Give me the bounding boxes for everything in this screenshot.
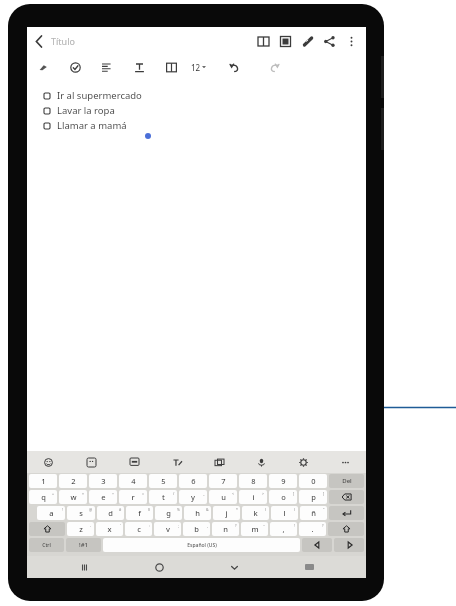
button[interactable]: Paragraph style	[91, 55, 123, 79]
button[interactable]: Ir al supermercado	[27, 88, 366, 103]
staticText: @	[89, 507, 93, 512]
button[interactable]: ñ	[300, 506, 327, 520]
button[interactable]: l	[271, 506, 298, 520]
button[interactable]: Clipboard	[198, 451, 240, 473]
button[interactable]: y	[179, 490, 207, 504]
button[interactable]: More	[324, 451, 366, 473]
button[interactable]: Emoji	[27, 451, 70, 473]
button[interactable]: f	[126, 506, 153, 520]
button[interactable]: 9	[269, 474, 297, 488]
button[interactable]: Shift	[29, 522, 65, 536]
button[interactable]: Shift	[328, 522, 364, 536]
button[interactable]: Recents	[70, 556, 98, 578]
staticText: ×	[82, 491, 85, 496]
button[interactable]: j	[213, 506, 240, 520]
staticText: q	[41, 492, 46, 502]
button[interactable]: u	[209, 490, 237, 504]
button[interactable]: 4	[119, 474, 147, 488]
button[interactable]: p	[299, 490, 327, 504]
button[interactable]: e	[89, 490, 117, 504]
button[interactable]: z	[67, 522, 94, 536]
button[interactable]: Cursor right	[334, 538, 364, 552]
button[interactable]: s	[67, 506, 95, 520]
button[interactable]: Share	[318, 28, 340, 54]
button[interactable]: Backspace	[329, 490, 364, 504]
button[interactable]: i	[239, 490, 267, 504]
button[interactable]: Redo	[258, 55, 290, 79]
staticText: )	[294, 507, 296, 512]
button[interactable]: Handwriting	[156, 451, 198, 473]
staticText: !#1	[79, 541, 88, 549]
staticText: v	[166, 524, 170, 534]
staticText: %	[177, 507, 180, 512]
button[interactable]: View mode	[252, 28, 274, 54]
button[interactable]: 8	[239, 474, 267, 488]
button[interactable]: Español (US)	[103, 538, 300, 552]
button[interactable]: .	[299, 522, 326, 536]
button[interactable]: 12	[191, 56, 206, 78]
staticText: t	[162, 492, 165, 502]
button[interactable]: Checklist	[59, 55, 91, 79]
button[interactable]: 5	[149, 474, 177, 488]
button[interactable]: 3	[89, 474, 117, 488]
button[interactable]: v	[154, 522, 181, 536]
button[interactable]: a	[37, 506, 65, 520]
staticText: Llamar a mamá	[57, 119, 127, 132]
button[interactable]: Settings	[282, 451, 324, 473]
staticText: !	[62, 507, 63, 512]
button[interactable]: Change keyboard	[295, 556, 323, 578]
button[interactable]: t	[149, 490, 177, 504]
staticText: ÷	[112, 491, 115, 496]
button[interactable]: Del	[329, 474, 364, 488]
staticText: (	[265, 507, 267, 512]
staticText: "	[323, 507, 325, 512]
staticText: j	[225, 508, 228, 518]
button[interactable]: Voice input	[240, 451, 282, 473]
button[interactable]: More options	[340, 28, 362, 54]
button[interactable]: !#1	[66, 538, 101, 552]
button[interactable]: 6	[179, 474, 207, 488]
button[interactable]: g	[155, 506, 182, 520]
staticText: l	[283, 508, 286, 518]
button[interactable]: ,	[270, 522, 297, 536]
button[interactable]: Enter	[329, 506, 364, 520]
button[interactable]: c	[125, 522, 152, 536]
button[interactable]: 2	[59, 474, 87, 488]
button[interactable]: h	[184, 506, 211, 520]
button[interactable]: Undo	[218, 55, 250, 79]
button[interactable]: o	[269, 490, 297, 504]
staticText: b	[194, 524, 199, 534]
button[interactable]: 7	[209, 474, 237, 488]
staticText: 7	[221, 476, 226, 486]
staticText: -	[90, 523, 92, 528]
button[interactable]: Home	[145, 556, 173, 578]
button[interactable]: Insert	[274, 28, 296, 54]
button[interactable]: Lavar la ropa	[27, 103, 366, 118]
button[interactable]: Stickers	[70, 451, 113, 473]
button[interactable]: q	[29, 490, 57, 504]
button[interactable]: Back	[27, 29, 51, 53]
button[interactable]: r	[119, 490, 147, 504]
button[interactable]: Ctrl	[29, 538, 64, 552]
button[interactable]: GIF	[113, 451, 156, 473]
staticText: 12	[191, 62, 201, 73]
button[interactable]: Llamar a mamá	[27, 118, 366, 133]
button[interactable]: x	[96, 522, 123, 536]
button[interactable]: 0	[299, 474, 327, 488]
button[interactable]: d	[97, 506, 124, 520]
button[interactable]: k	[242, 506, 269, 520]
button[interactable]: Text style	[123, 55, 155, 79]
button[interactable]: Insert table	[155, 55, 187, 79]
button[interactable]: m	[241, 522, 268, 536]
button[interactable]: Hide keyboard	[220, 556, 248, 578]
button[interactable]: n	[212, 522, 239, 536]
button[interactable]: Cursor left	[302, 538, 332, 552]
staticText: Ir al supermercado	[57, 89, 142, 102]
button[interactable]: b	[183, 522, 210, 536]
button[interactable]: Brush	[27, 55, 59, 79]
button[interactable]: Attach	[296, 28, 318, 54]
button[interactable]: 1	[29, 474, 57, 488]
button[interactable]: w	[59, 490, 87, 504]
staticText: ,	[282, 524, 285, 534]
staticText: f	[138, 508, 141, 518]
